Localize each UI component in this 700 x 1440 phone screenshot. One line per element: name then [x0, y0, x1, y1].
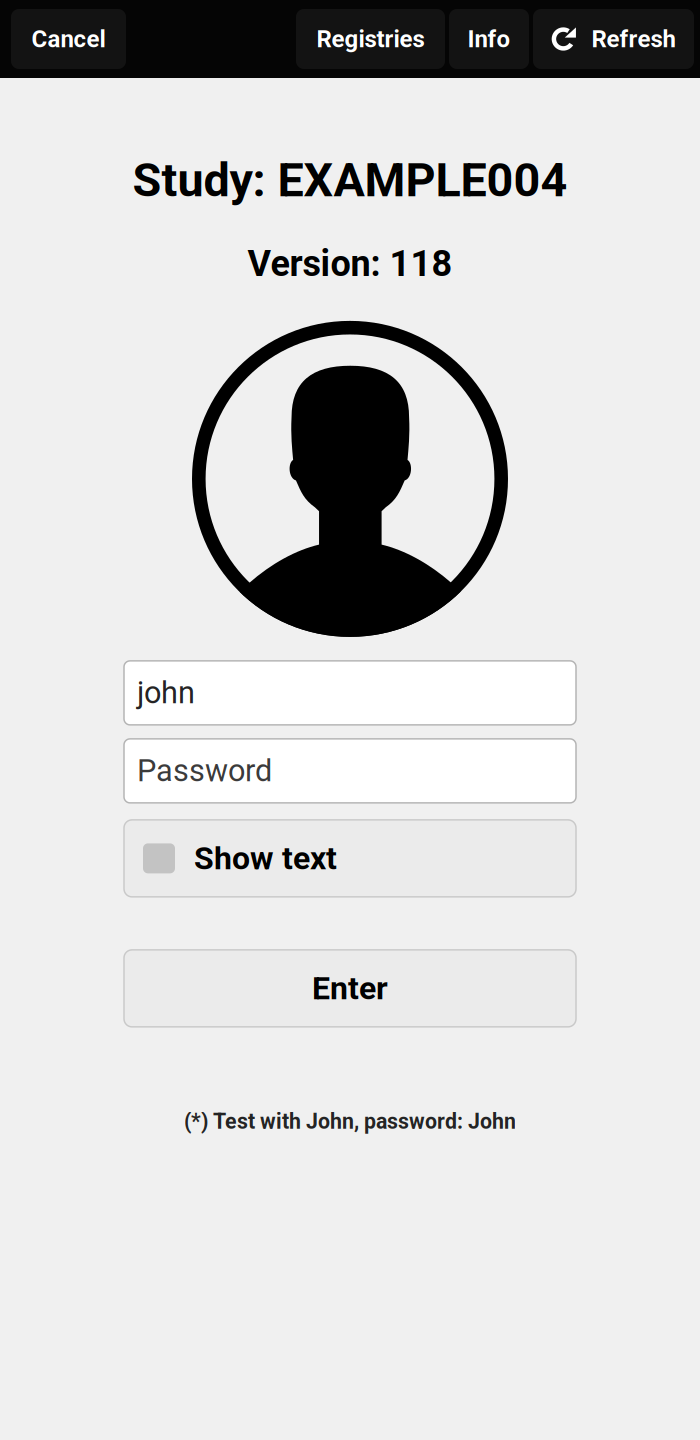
staticText: Enter: [312, 970, 388, 1007]
button[interactable]: Refresh: [533, 9, 694, 69]
button[interactable]: Registries: [296, 9, 445, 69]
staticText: Show text: [194, 840, 337, 877]
staticText: Study: EXAMPLE004: [132, 153, 567, 208]
staticText: Password: [137, 753, 272, 789]
button[interactable]: Cancel: [11, 9, 126, 69]
staticText: Info: [467, 25, 510, 53]
staticText: (*) Test with John, password: John: [184, 1109, 516, 1134]
staticText: Cancel: [31, 25, 105, 53]
staticText: Refresh: [591, 25, 675, 53]
staticText: Registries: [316, 25, 424, 53]
staticText: Version: 118: [247, 243, 452, 285]
staticText: john: [137, 675, 195, 711]
button[interactable]: Show text: [124, 820, 576, 897]
button[interactable]: Info: [449, 9, 529, 69]
button[interactable]: Enter: [124, 950, 576, 1027]
